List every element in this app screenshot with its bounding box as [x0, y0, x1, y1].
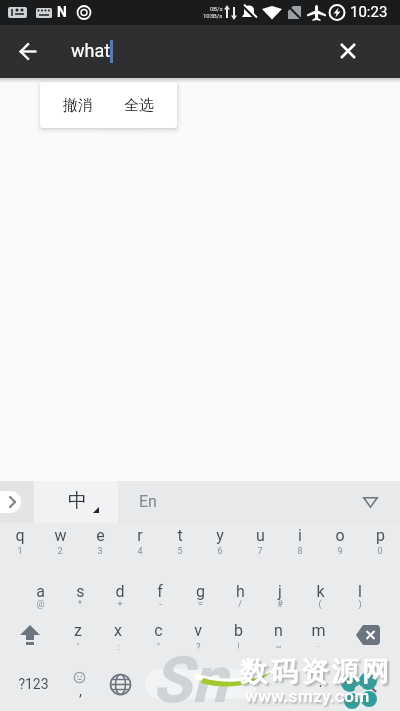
staticText: a [36, 582, 45, 601]
staticText: @ [36, 599, 45, 610]
button[interactable]: r [120, 522, 160, 548]
staticText: / [238, 599, 242, 610]
button[interactable]: x [98, 617, 138, 643]
staticText: u [256, 526, 265, 545]
button[interactable] [8, 31, 48, 71]
button[interactable]: c [138, 617, 178, 643]
button[interactable] [60, 663, 100, 705]
button[interactable]: e [80, 522, 120, 548]
staticText: 5 [177, 546, 183, 557]
staticText: g [196, 582, 205, 601]
button[interactable]: g [180, 578, 220, 604]
staticText: b [234, 621, 243, 640]
button[interactable]: q [0, 522, 40, 548]
button[interactable]: t [160, 522, 200, 548]
button[interactable]: m [298, 617, 338, 643]
staticText: 0B/s [210, 5, 223, 12]
staticText: h [236, 582, 245, 601]
button[interactable]: l [340, 578, 380, 604]
staticText: c [154, 621, 163, 640]
button[interactable] [344, 663, 392, 705]
staticText: ' [77, 642, 79, 653]
staticText: 4 [137, 546, 143, 557]
staticText: 数码资源网 [240, 655, 393, 689]
button[interactable]: n [258, 617, 298, 643]
button[interactable] [363, 497, 378, 508]
staticText: f [157, 582, 163, 601]
staticText: 6 [217, 546, 223, 557]
button[interactable]: k [300, 578, 340, 604]
staticText: 8 [297, 546, 303, 557]
staticText: - [159, 599, 162, 610]
button[interactable]: w [40, 522, 80, 548]
button[interactable]: i [280, 522, 320, 548]
staticText: i [298, 526, 302, 545]
button[interactable] [118, 481, 198, 523]
button[interactable]: f [140, 578, 180, 604]
button[interactable]: p [360, 522, 400, 548]
staticText: n [274, 621, 283, 640]
button[interactable]: 撤消 [40, 82, 116, 128]
staticText: m [311, 621, 326, 640]
staticText: o [335, 526, 345, 545]
staticText: 中 [68, 489, 87, 513]
staticText: ? [196, 642, 201, 653]
button[interactable]: d [100, 578, 140, 604]
button[interactable]: s [60, 578, 100, 604]
staticText: t [177, 526, 183, 545]
staticText: q [15, 526, 25, 545]
button[interactable]: b [218, 617, 258, 643]
staticText: ! [237, 642, 240, 653]
button[interactable] [100, 663, 140, 705]
staticText: En [139, 492, 157, 511]
staticText: ?123 [18, 676, 49, 692]
staticText: 0 [377, 546, 383, 557]
staticText: p [376, 526, 385, 545]
staticText: 7 [257, 546, 263, 557]
button[interactable]: a [20, 578, 60, 604]
staticText: # [277, 599, 283, 610]
button[interactable]: o [320, 522, 360, 548]
staticText: ~ [275, 642, 282, 653]
staticText: v [194, 621, 202, 640]
button[interactable]: v [178, 617, 218, 643]
staticText: : [117, 642, 120, 653]
staticText: 103B/s [203, 12, 223, 19]
staticText: j [278, 582, 282, 601]
staticText: Sn [152, 643, 228, 711]
staticText: w [54, 526, 67, 545]
button[interactable]: u [240, 522, 280, 548]
staticText: z [74, 621, 82, 640]
staticText: , [79, 682, 82, 698]
staticText: * [78, 599, 82, 610]
button[interactable] [6, 615, 54, 655]
button[interactable] [344, 615, 392, 655]
staticText: . [318, 672, 323, 690]
button[interactable]: 全选 [116, 82, 162, 128]
staticText: www.smzy.com [245, 686, 370, 706]
button[interactable]: . [310, 672, 330, 690]
staticText: ) [358, 599, 362, 610]
staticText: " [157, 642, 160, 653]
button[interactable] [145, 669, 257, 699]
staticText: s [76, 582, 85, 601]
button[interactable] [34, 481, 118, 523]
staticText: l [358, 582, 362, 601]
staticText: 3 [97, 546, 103, 557]
button[interactable]: h [220, 578, 260, 604]
staticText: 1 [17, 546, 23, 557]
staticText: 2 [57, 546, 63, 557]
staticText: + [117, 599, 123, 610]
button[interactable]: ?123 [5, 672, 61, 696]
staticText: what [71, 40, 111, 61]
staticText: y [216, 526, 224, 545]
button[interactable]: y [200, 522, 240, 548]
button[interactable] [0, 481, 34, 523]
staticText: 撤消 [63, 96, 93, 115]
staticText: · [317, 642, 320, 653]
button[interactable] [328, 31, 368, 71]
staticText: = [198, 599, 203, 610]
button[interactable]: z [58, 617, 98, 643]
staticText: 全选 [124, 96, 154, 115]
button[interactable]: j [260, 578, 300, 604]
